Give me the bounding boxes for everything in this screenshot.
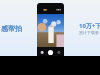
button[interactable]: Phone preview [37,3,64,57]
staticText: 感帮拍 [1,24,22,33]
staticText: 累计下载量 [79,30,99,35]
staticText: 10万+下 [79,22,100,30]
